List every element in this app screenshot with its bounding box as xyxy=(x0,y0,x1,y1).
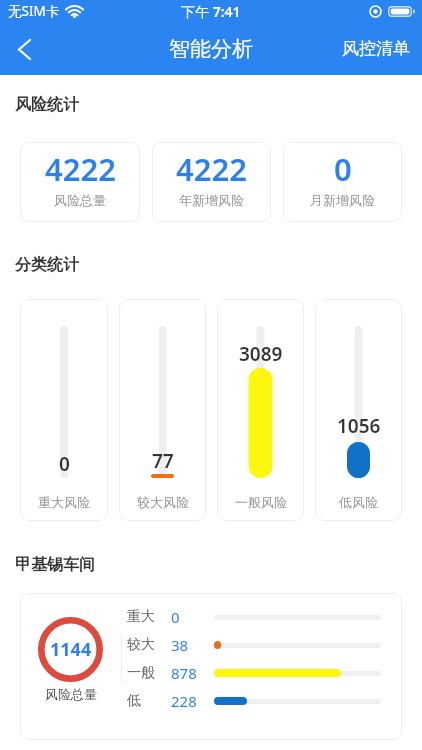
staticText: 重大风险 xyxy=(38,494,90,510)
button[interactable]: 0 xyxy=(283,142,402,222)
staticText: 878 xyxy=(171,663,197,683)
staticText: 0 xyxy=(334,148,352,190)
staticText: 月新增风险 xyxy=(310,192,375,208)
staticText: 风险总量 xyxy=(54,192,106,208)
staticText: 1144 xyxy=(50,637,92,662)
button[interactable]: 77 xyxy=(119,299,206,521)
button[interactable]: 1056 xyxy=(315,299,402,521)
staticText: 一般风险 xyxy=(235,494,287,510)
staticText: 重大 xyxy=(127,608,155,626)
staticText: 1056 xyxy=(337,413,381,439)
staticText: 较大风险 xyxy=(137,494,189,510)
staticText: 低 xyxy=(127,692,141,710)
staticText: 分类统计 xyxy=(15,255,79,275)
staticText: 0 xyxy=(59,451,70,477)
button[interactable]: 3089 xyxy=(217,299,304,521)
staticText: 风控清单 xyxy=(342,38,410,59)
staticText: 38 xyxy=(171,635,189,655)
staticText: 智能分析 xyxy=(169,36,253,62)
staticText: 较大 xyxy=(127,636,155,654)
staticText: 一般 xyxy=(127,664,155,682)
button[interactable]: 4222 xyxy=(20,142,140,222)
staticText: 228 xyxy=(171,691,197,711)
staticText: 无SIM卡 xyxy=(8,2,60,20)
staticText: 风险统计 xyxy=(15,95,79,115)
staticText: 4222 xyxy=(45,148,116,190)
staticText: 年新增风险 xyxy=(179,192,244,208)
button[interactable] xyxy=(8,33,40,65)
button[interactable]: 风控清单 xyxy=(342,38,422,59)
button[interactable]: 4222 xyxy=(152,142,271,222)
button[interactable]: 0 xyxy=(20,299,108,521)
staticText: 风险总量 xyxy=(45,686,97,702)
staticText: 77 xyxy=(152,448,174,474)
staticText: 0 xyxy=(171,607,180,627)
button[interactable]: 1144 xyxy=(20,593,402,740)
staticText: 3089 xyxy=(239,341,283,367)
staticText: 甲基锡车间 xyxy=(15,555,95,575)
staticText: 4222 xyxy=(176,148,247,190)
staticText: 低风险 xyxy=(339,494,378,510)
staticText: 下午 7:41 xyxy=(181,2,241,21)
